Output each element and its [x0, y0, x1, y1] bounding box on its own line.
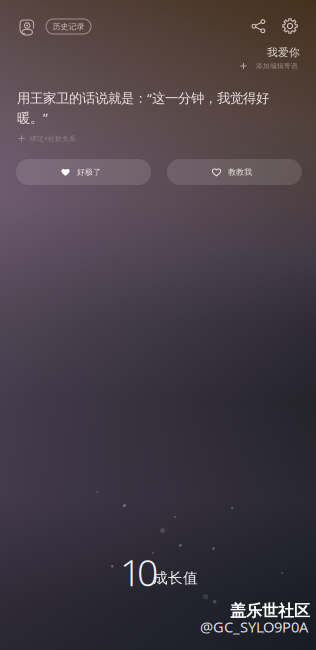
- staticText: 添加编辑寄语: [256, 62, 298, 70]
- staticText: 教教我: [228, 167, 252, 177]
- staticText: 10: [120, 547, 158, 597]
- button[interactable]: Share: [248, 16, 269, 36]
- staticText: 用王家卫的话说就是：“这一分钟，我觉得好暖。”: [17, 89, 269, 126]
- staticText: 绑定×社群关系: [30, 134, 76, 143]
- button[interactable]: Settings: [279, 15, 301, 37]
- staticText: 成长值: [153, 569, 198, 587]
- staticText: 我爱你: [267, 46, 300, 59]
- staticText: @GC_SYLO9P0A: [200, 617, 308, 636]
- button[interactable]: 好极了: [16, 159, 151, 185]
- staticText: 好极了: [77, 167, 101, 177]
- button[interactable]: Profile: [15, 15, 39, 39]
- staticText: 盖乐世社区: [230, 601, 310, 621]
- button[interactable]: 历史记录: [46, 19, 91, 34]
- button[interactable]: 教教我: [167, 159, 302, 185]
- button[interactable]: 绑定×社群关系: [18, 134, 76, 143]
- button[interactable]: 添加编辑寄语: [240, 61, 298, 71]
- staticText: 历史记录: [52, 22, 84, 31]
